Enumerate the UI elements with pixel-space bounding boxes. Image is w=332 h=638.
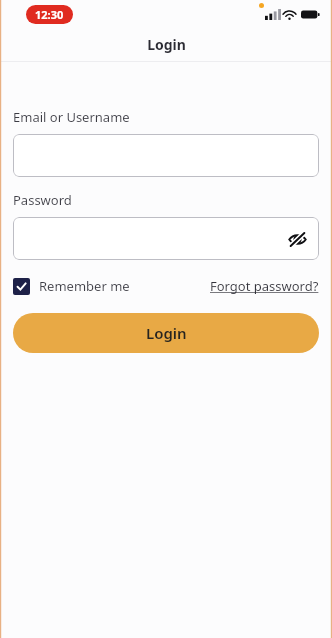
button[interactable]: Toggle password visibility	[13, 217, 319, 260]
button[interactable]: Forgot password?	[210, 275, 319, 297]
staticText: Login	[146, 323, 187, 343]
staticText: Remember me	[39, 277, 130, 295]
staticText: 12:30	[35, 7, 64, 22]
button[interactable]: Toggle password visibility	[285, 227, 309, 251]
staticText: Login	[147, 35, 186, 54]
staticText: Forgot password?	[210, 277, 319, 295]
button[interactable]	[13, 134, 319, 177]
button[interactable]: Login	[13, 313, 319, 353]
staticText: Email or Username	[13, 108, 130, 126]
button[interactable]: Remember me checkbox	[13, 275, 130, 297]
staticText: Password	[13, 191, 72, 209]
other: Remember me checkbox	[13, 278, 30, 295]
